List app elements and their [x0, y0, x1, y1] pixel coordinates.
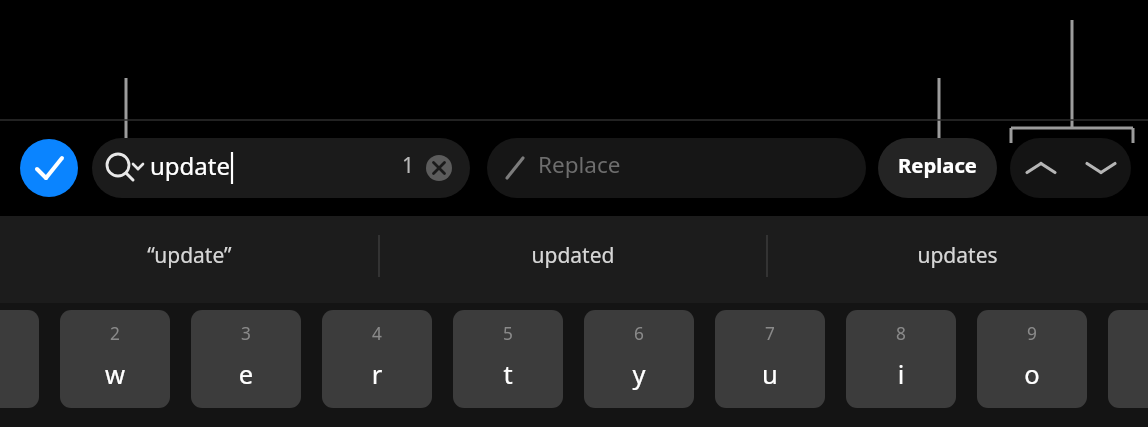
- staticText: 8: [846, 322, 956, 350]
- staticText: 2: [60, 322, 170, 350]
- staticText: 9: [977, 322, 1087, 350]
- button[interactable]: [878, 138, 997, 198]
- staticText: updated: [379, 241, 767, 279]
- button[interactable]: [767, 215, 1148, 303]
- staticText: o: [977, 357, 1087, 399]
- staticText: u: [715, 357, 825, 399]
- button[interactable]: [584, 310, 694, 408]
- button[interactable]: Replace field: [487, 138, 866, 198]
- button[interactable]: Next match: [1071, 138, 1131, 198]
- staticText: 7: [715, 322, 825, 350]
- button[interactable]: [715, 310, 825, 408]
- staticText: update: [150, 149, 410, 187]
- button[interactable]: [846, 310, 956, 408]
- staticText: e: [191, 357, 301, 399]
- button[interactable]: Previous match: [1010, 138, 1070, 198]
- staticText: r: [322, 357, 432, 399]
- staticText: i: [846, 357, 956, 399]
- staticText: Replace: [538, 149, 778, 187]
- staticText: 5: [453, 322, 563, 350]
- staticText: 6: [584, 322, 694, 350]
- staticText: y: [584, 357, 694, 399]
- button[interactable]: [977, 310, 1087, 408]
- staticText: w: [60, 357, 170, 399]
- staticText: t: [453, 357, 563, 399]
- button[interactable]: [453, 310, 563, 408]
- button[interactable]: [60, 310, 170, 408]
- button[interactable]: [379, 215, 767, 303]
- staticText: 4: [322, 322, 432, 350]
- staticText: Replace: [878, 151, 997, 185]
- button[interactable]: Search field: [92, 138, 470, 198]
- staticText: “update”: [0, 241, 379, 279]
- button[interactable]: [322, 310, 432, 408]
- staticText: 1: [396, 151, 420, 185]
- staticText: 3: [191, 322, 301, 350]
- button[interactable]: Confirm: [20, 138, 78, 198]
- button[interactable]: [191, 310, 301, 408]
- staticText: updates: [767, 241, 1148, 279]
- button[interactable]: Clear search: [423, 150, 457, 186]
- button[interactable]: [0, 215, 379, 303]
